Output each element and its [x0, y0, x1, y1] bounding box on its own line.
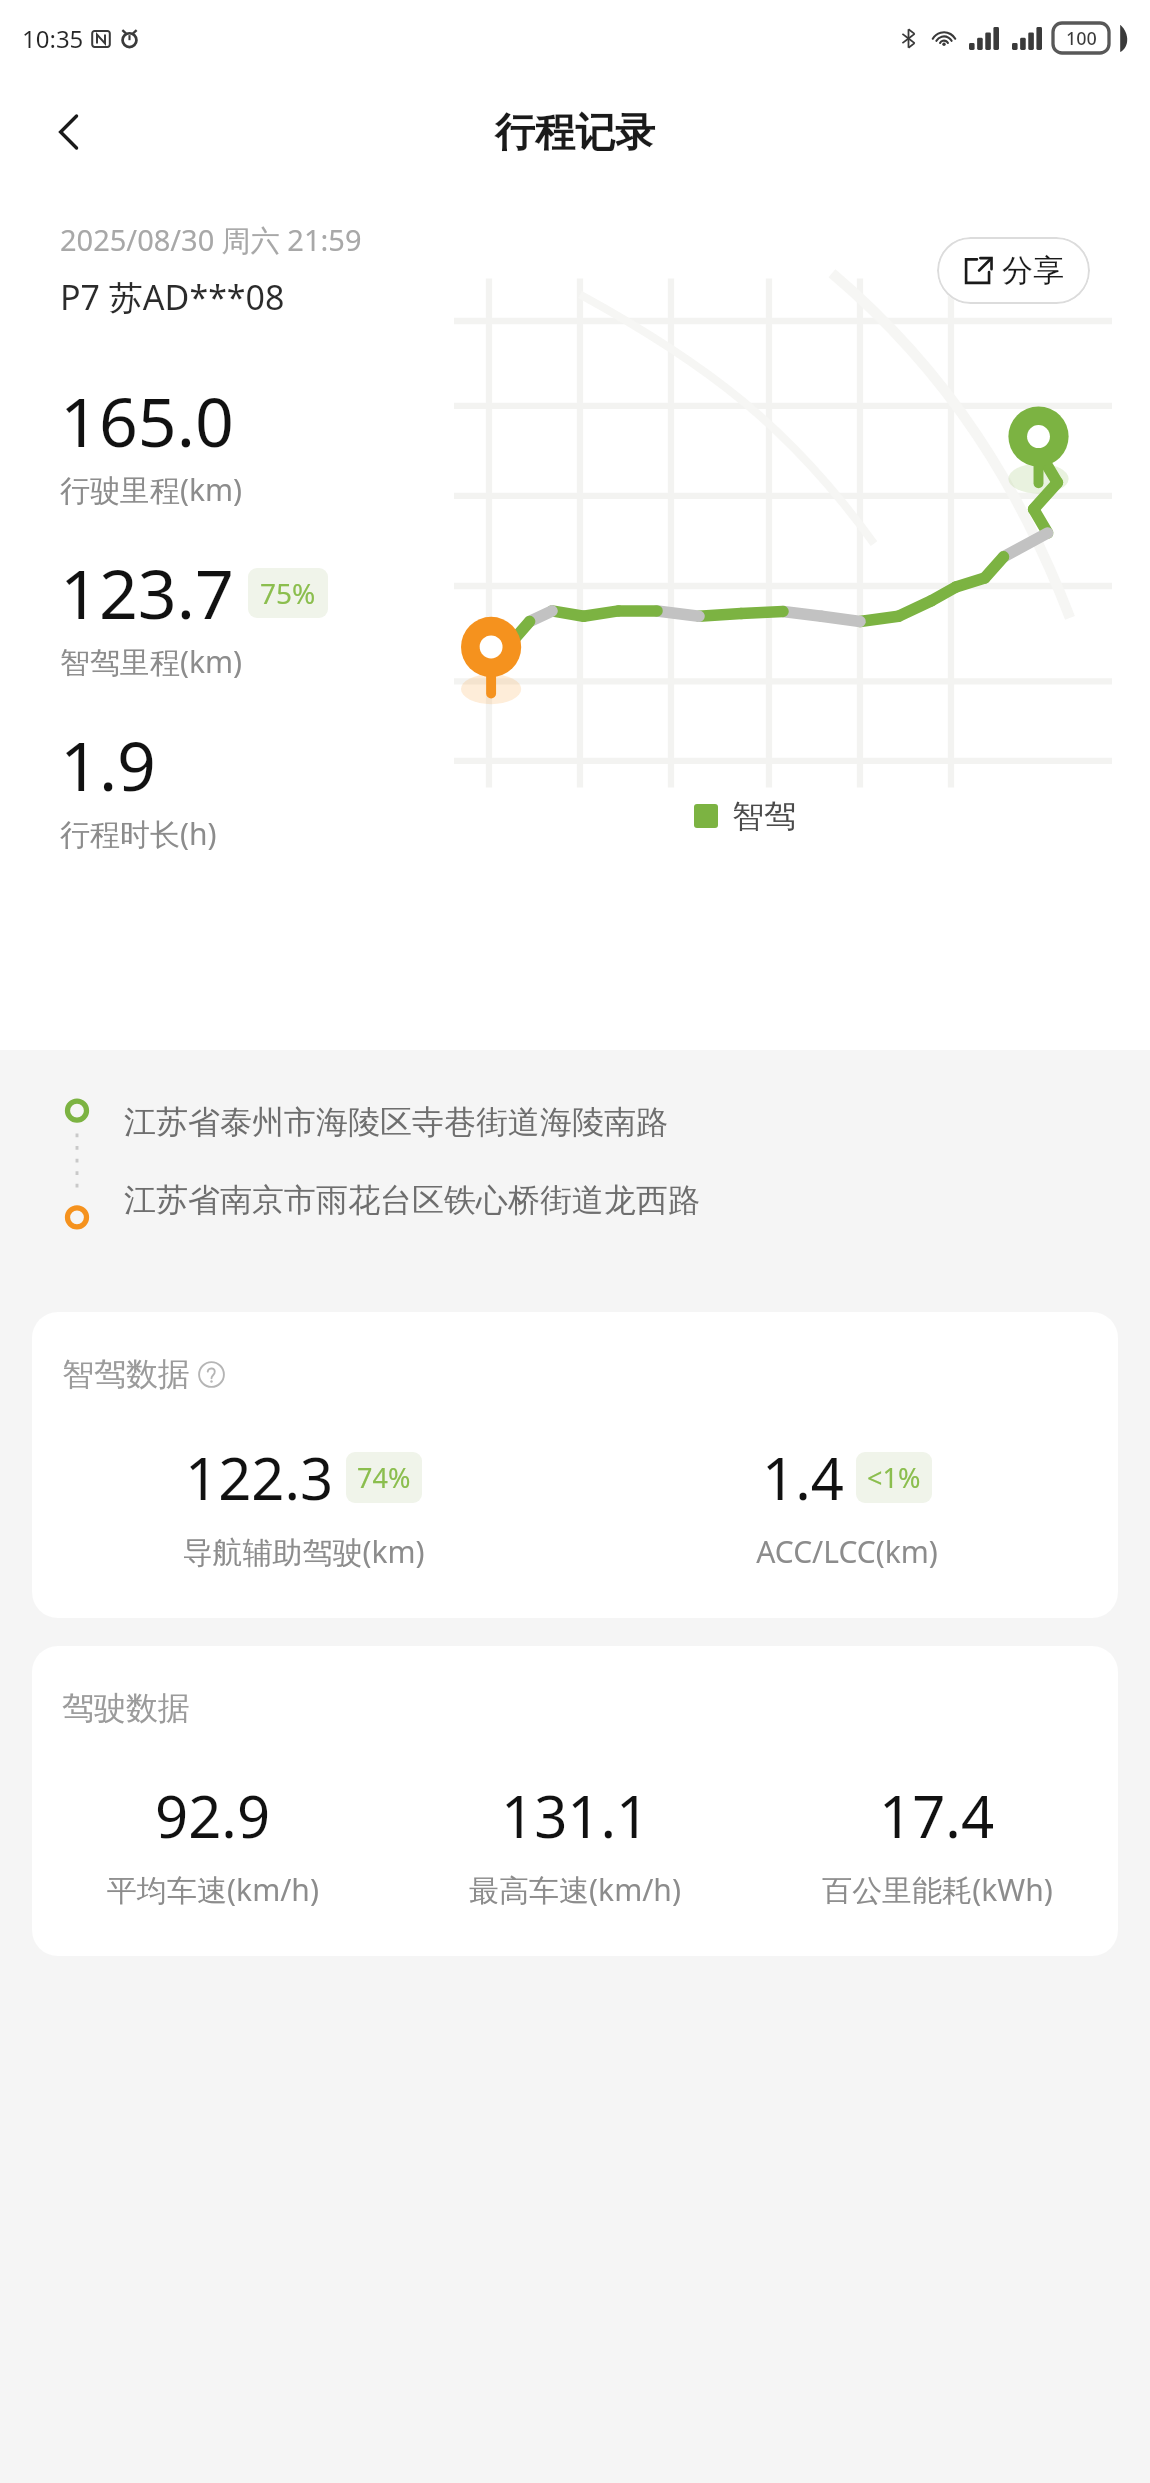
staticText: 行程时长(h)	[60, 813, 217, 854]
staticText: 智驾里程(km)	[60, 641, 243, 682]
staticText: <1%	[867, 1459, 921, 1496]
button[interactable]: 智驾数据	[32, 1312, 1118, 1618]
staticText: 行程记录	[495, 107, 655, 157]
staticText: 最高车速(km/h)	[469, 1869, 681, 1910]
staticText: 165.0	[60, 374, 234, 467]
staticText: 2025/08/30 周六 21:59	[60, 220, 362, 260]
button[interactable]: 驾驶数据	[32, 1646, 1118, 1956]
staticText: 智驾数据	[62, 1354, 190, 1394]
staticText: 江苏省南京市雨花台区铁心桥街道龙西路	[124, 1180, 700, 1220]
staticText: 平均车速(km/h)	[107, 1869, 319, 1910]
button[interactable]: Back	[36, 99, 102, 165]
staticText: 75%	[260, 574, 316, 612]
staticText: 10:35	[22, 22, 84, 55]
staticText: 智驾	[732, 796, 796, 836]
staticText: 74%	[357, 1459, 411, 1496]
staticText: P7 苏AD***08	[60, 274, 285, 320]
staticText: 122.3	[185, 1438, 334, 1517]
staticText: ACC/LCC(km)	[756, 1531, 938, 1572]
staticText: 导航辅助驾驶(km)	[182, 1531, 425, 1572]
staticText: 江苏省泰州市海陵区寺巷街道海陵南路	[124, 1102, 668, 1142]
staticText: 百公里能耗(kWh)	[822, 1869, 1053, 1910]
staticText: 92.9	[155, 1776, 271, 1855]
button[interactable]: 分享	[937, 237, 1090, 304]
staticText: 100	[1066, 26, 1097, 51]
staticText: 1.9	[60, 718, 157, 811]
staticText: 1.4	[762, 1438, 844, 1517]
staticText: 驾驶数据	[62, 1688, 190, 1728]
staticText: 分享	[1002, 251, 1064, 290]
staticText: 17.4	[879, 1776, 995, 1855]
staticText: 123.7	[60, 546, 234, 639]
staticText: 行驶里程(km)	[60, 469, 243, 510]
staticText: 131.1	[501, 1776, 650, 1855]
